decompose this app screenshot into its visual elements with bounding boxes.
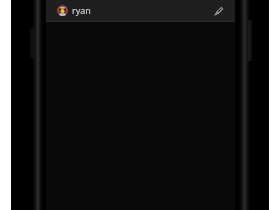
- staticText: ryan: [72, 4, 91, 16]
- button[interactable]: ryan: [46, 0, 235, 21]
- button[interactable]: Compose message: [209, 1, 228, 20]
